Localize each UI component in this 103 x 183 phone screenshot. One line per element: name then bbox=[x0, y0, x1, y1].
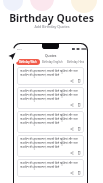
button[interactable]: Send bbox=[4, 48, 20, 64]
staticText: Quotes bbox=[45, 53, 57, 57]
button[interactable]: Copy bbox=[77, 127, 81, 131]
button[interactable]: Copy bbox=[77, 151, 81, 155]
button[interactable]: Birthday Wish bbox=[16, 59, 40, 65]
staticText: जन्मदिन की शुभकामनाएं आपको मिले खुशियां … bbox=[20, 161, 78, 165]
staticText: Birthday Wish bbox=[19, 60, 37, 64]
button[interactable]: Birthday English bbox=[40, 59, 65, 65]
button[interactable]: Birthday Hindi bbox=[65, 59, 86, 65]
button[interactable]: जन्मदिन की शुभकामनाएं आपको मिले खुशियां … bbox=[17, 111, 84, 133]
staticText: Birthday Hindi bbox=[67, 60, 84, 64]
staticText: जन्मदिन की शुभकामनाएं आपको मिले खुशियां … bbox=[20, 93, 78, 97]
staticText: जन्मदिन की शुभकामनाएं आपको मिले खुशियां … bbox=[20, 117, 78, 121]
staticText: जन्मदिन की शुभकामनाएं आपको मिले bbox=[20, 121, 60, 125]
button[interactable]: जन्मदिन की शुभकामनाएं आपको मिले खुशियां … bbox=[17, 135, 84, 157]
staticText: जन्मदिन की शुभकामनाएं आपको मिले bbox=[20, 145, 60, 149]
button[interactable]: Share bbox=[70, 79, 74, 83]
button[interactable]: Copy bbox=[77, 171, 81, 175]
staticText: जन्मदिन की शुभकामनाएं आपको मिले खुशियां … bbox=[20, 137, 78, 141]
staticText: जन्मदिन की शुभकामनाएं आपको मिले bbox=[20, 73, 60, 77]
button[interactable]: जन्मदिन की शुभकामनाएं आपको मिले खुशियां … bbox=[17, 159, 84, 177]
staticText: जन्मदिन की शुभकामनाएं आपको मिले खुशियां … bbox=[20, 113, 78, 117]
staticText: जन्मदिन की शुभकामनाएं आपको मिले खुशियां … bbox=[20, 141, 78, 145]
staticText: जन्मदिन की शुभकामनाएं आपको मिले खुशियां … bbox=[20, 69, 78, 73]
staticText: जन्मदिन की शुभकामनाएं आपको मिले bbox=[20, 97, 60, 101]
button[interactable]: Copy bbox=[77, 79, 81, 83]
staticText: जन्मदिन की शुभकामनाएं आपको मिले खुशियां … bbox=[20, 89, 78, 93]
staticText: 9:41 bbox=[17, 47, 22, 50]
button[interactable]: Share bbox=[70, 171, 74, 175]
button[interactable]: Share bbox=[70, 151, 74, 155]
staticText: जन्मदिन की शुभकामनाएं आपको मिले bbox=[20, 165, 60, 169]
staticText: Birthday English bbox=[42, 60, 63, 64]
staticText: Birthday Quotes bbox=[9, 11, 94, 25]
staticText: Add Birthday Quotes bbox=[34, 24, 70, 29]
button[interactable]: Share bbox=[70, 103, 74, 107]
button[interactable]: जन्मदिन की शुभकामनाएं आपको मिले खुशियां … bbox=[17, 67, 84, 85]
button[interactable]: Copy bbox=[77, 103, 81, 107]
button[interactable]: Share bbox=[70, 127, 74, 131]
button[interactable]: जन्मदिन की शुभकामनाएं आपको मिले खुशियां … bbox=[17, 87, 84, 109]
